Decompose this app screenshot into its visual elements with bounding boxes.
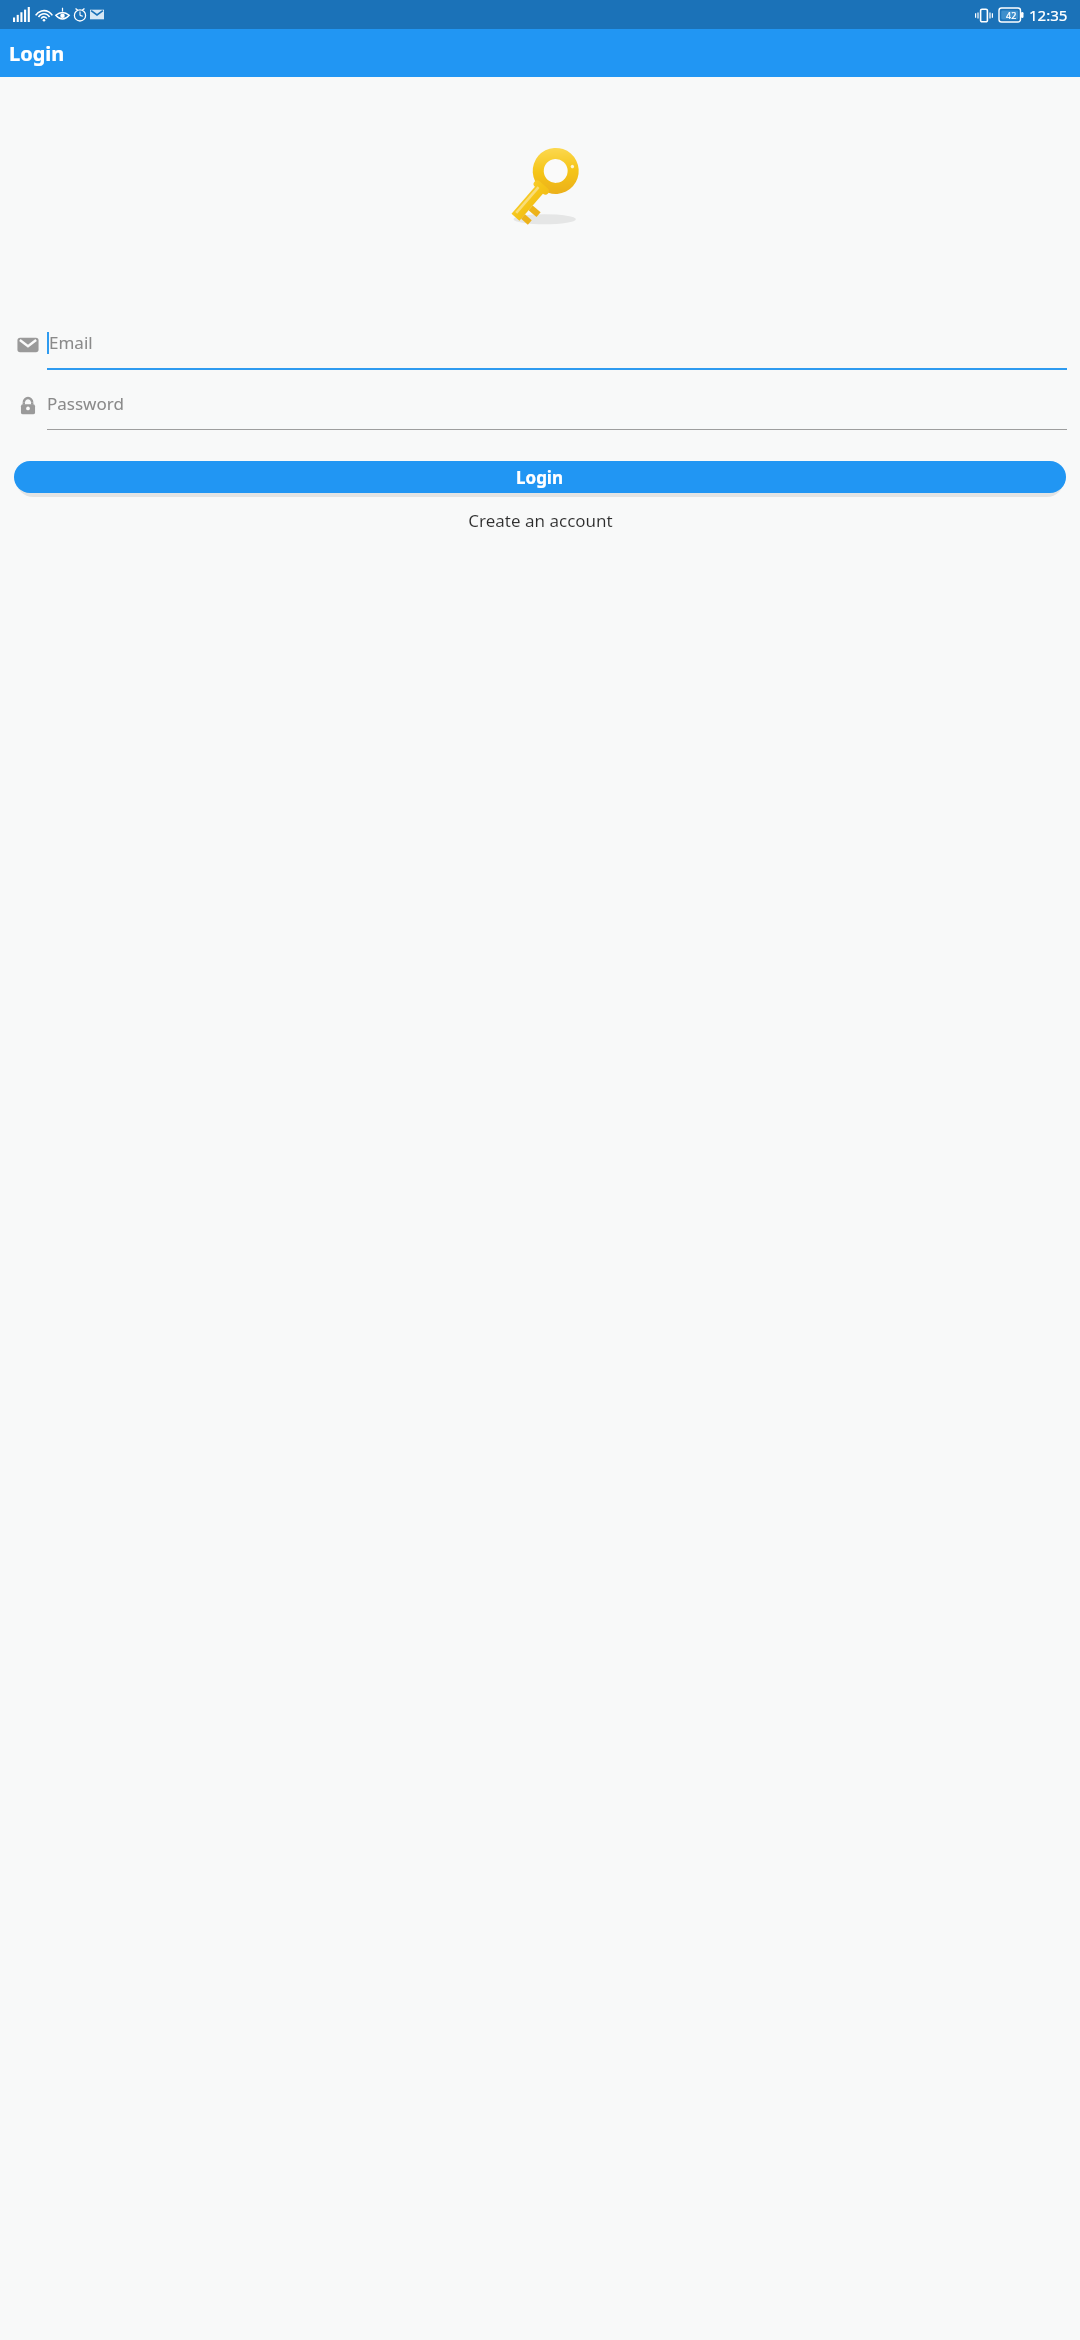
button[interactable]: Email: [9, 331, 1067, 375]
other: Email: [9, 331, 47, 375]
button[interactable]: Password: [9, 392, 1067, 436]
staticText: 42: [1006, 9, 1017, 21]
staticText: Password: [47, 392, 124, 415]
other: Password: [9, 392, 47, 436]
staticText: Login: [516, 466, 564, 489]
staticText: Create an account: [468, 509, 613, 532]
button[interactable]: Create an account: [0, 505, 1080, 536]
staticText: Email: [49, 331, 93, 354]
staticText: Login: [9, 40, 65, 67]
staticText: 12:35: [1029, 5, 1068, 25]
button[interactable]: Login: [14, 461, 1066, 493]
